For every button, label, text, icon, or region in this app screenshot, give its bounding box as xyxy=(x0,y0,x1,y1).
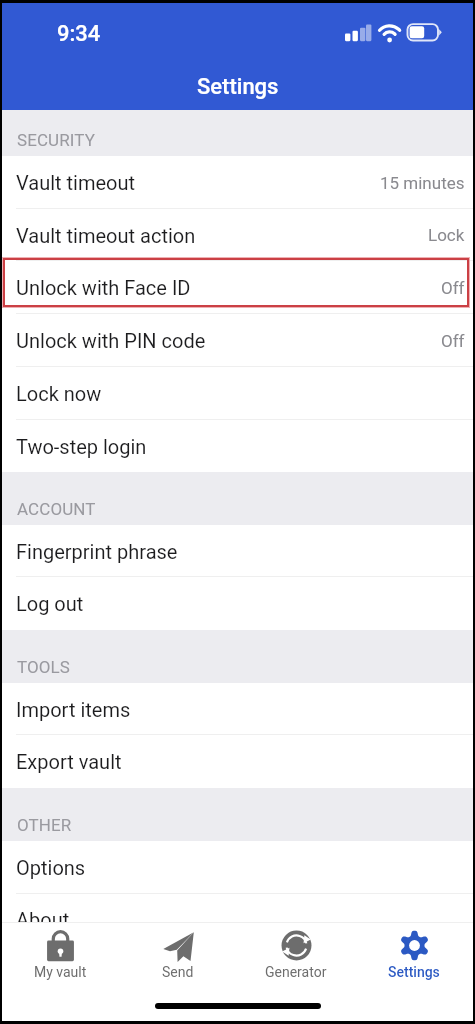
staticText: Generator xyxy=(265,964,327,980)
staticText: ACCOUNT xyxy=(17,499,96,519)
staticText: Lock now xyxy=(16,382,102,405)
staticText: Settings xyxy=(197,74,279,100)
other: Generator xyxy=(281,930,312,961)
staticText: OTHER xyxy=(17,815,72,835)
button[interactable]: Send xyxy=(119,923,237,985)
button[interactable]: Log out xyxy=(2,577,473,630)
button[interactable]: Unlock with PIN code xyxy=(2,314,473,367)
button[interactable]: Settings xyxy=(355,923,473,985)
staticText: Fingerprint phrase xyxy=(16,540,178,563)
other: My vault xyxy=(45,930,76,961)
button[interactable]: My vault xyxy=(2,923,119,985)
staticText: Lock xyxy=(428,225,465,245)
button[interactable]: About xyxy=(2,894,473,922)
staticText: SECURITY xyxy=(17,130,95,150)
button[interactable]: Fingerprint phrase xyxy=(2,525,473,577)
button[interactable]: Options xyxy=(2,841,473,894)
button[interactable]: Vault timeout xyxy=(2,156,473,209)
staticText: Export vault xyxy=(16,750,122,773)
other: Settings xyxy=(399,930,430,961)
staticText: Two-step login xyxy=(16,435,147,458)
staticText: Off xyxy=(441,278,465,298)
button[interactable]: Vault timeout action xyxy=(2,209,473,261)
staticText: Unlock with Face ID xyxy=(16,276,191,299)
button[interactable]: Generator xyxy=(237,923,355,985)
button[interactable]: Export vault xyxy=(2,735,473,788)
other: Send xyxy=(163,930,194,961)
staticText: Settings xyxy=(388,964,440,980)
staticText: 15 minutes xyxy=(380,173,465,193)
button[interactable]: Two-step login xyxy=(2,420,473,472)
button[interactable]: Unlock with Face ID xyxy=(2,261,473,314)
staticText: Options xyxy=(16,856,86,879)
staticText: About xyxy=(16,908,70,922)
staticText: Vault timeout xyxy=(16,171,136,194)
staticText: 9:34 xyxy=(57,21,101,47)
button[interactable]: Import items xyxy=(2,683,473,735)
staticText: TOOLS xyxy=(17,657,71,677)
staticText: My vault xyxy=(34,964,87,980)
staticText: Import items xyxy=(16,698,131,721)
staticText: Off xyxy=(441,331,465,351)
staticText: Log out xyxy=(16,592,84,615)
staticText: Send xyxy=(162,964,194,980)
staticText: Vault timeout action xyxy=(16,224,196,247)
staticText: Unlock with PIN code xyxy=(16,329,206,352)
button[interactable]: Lock now xyxy=(2,367,473,420)
